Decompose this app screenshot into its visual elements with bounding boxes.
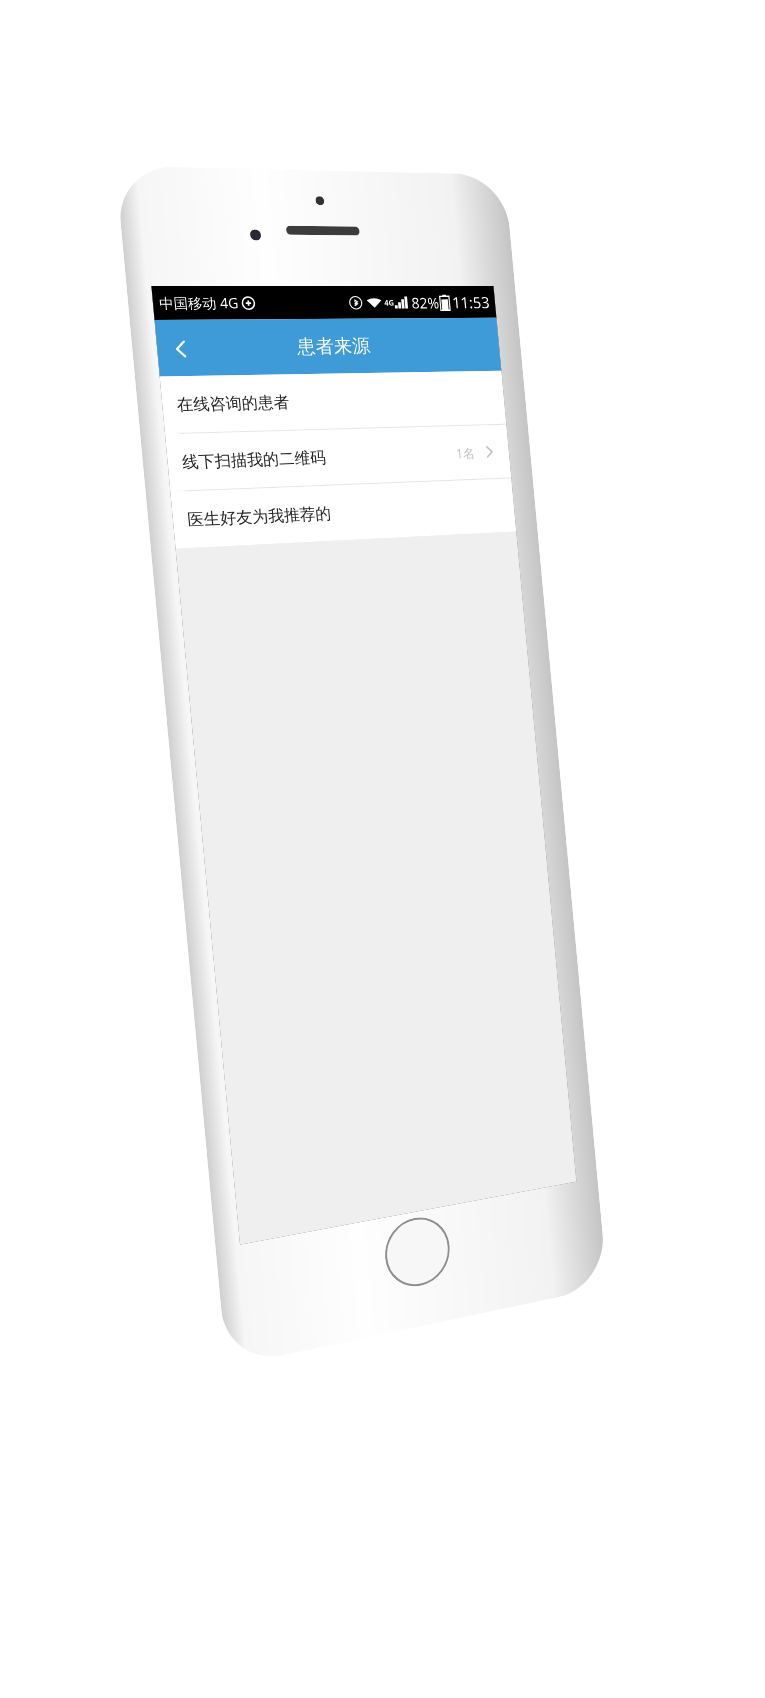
staticText: 线下扫描我的二维码 <box>181 448 327 473</box>
staticText: 在线咨询的患者 <box>176 392 290 415</box>
staticText: 中国移动 4G <box>158 293 239 313</box>
button[interactable]: 线下扫描我的二维码 <box>165 425 511 491</box>
button[interactable]: Home <box>382 1212 453 1292</box>
staticText: 1名 <box>455 444 476 462</box>
staticText: 4G <box>384 297 395 308</box>
staticText: 患者来源 <box>296 334 371 359</box>
button[interactable]: 医生好友为我推荐的 <box>170 479 516 549</box>
staticText: 医生好友为我推荐的 <box>187 504 332 531</box>
staticText: 82% <box>410 293 440 312</box>
button[interactable]: Back <box>155 325 206 372</box>
staticText: 11:53 <box>451 292 490 313</box>
button[interactable]: 在线咨询的患者 <box>160 371 506 433</box>
